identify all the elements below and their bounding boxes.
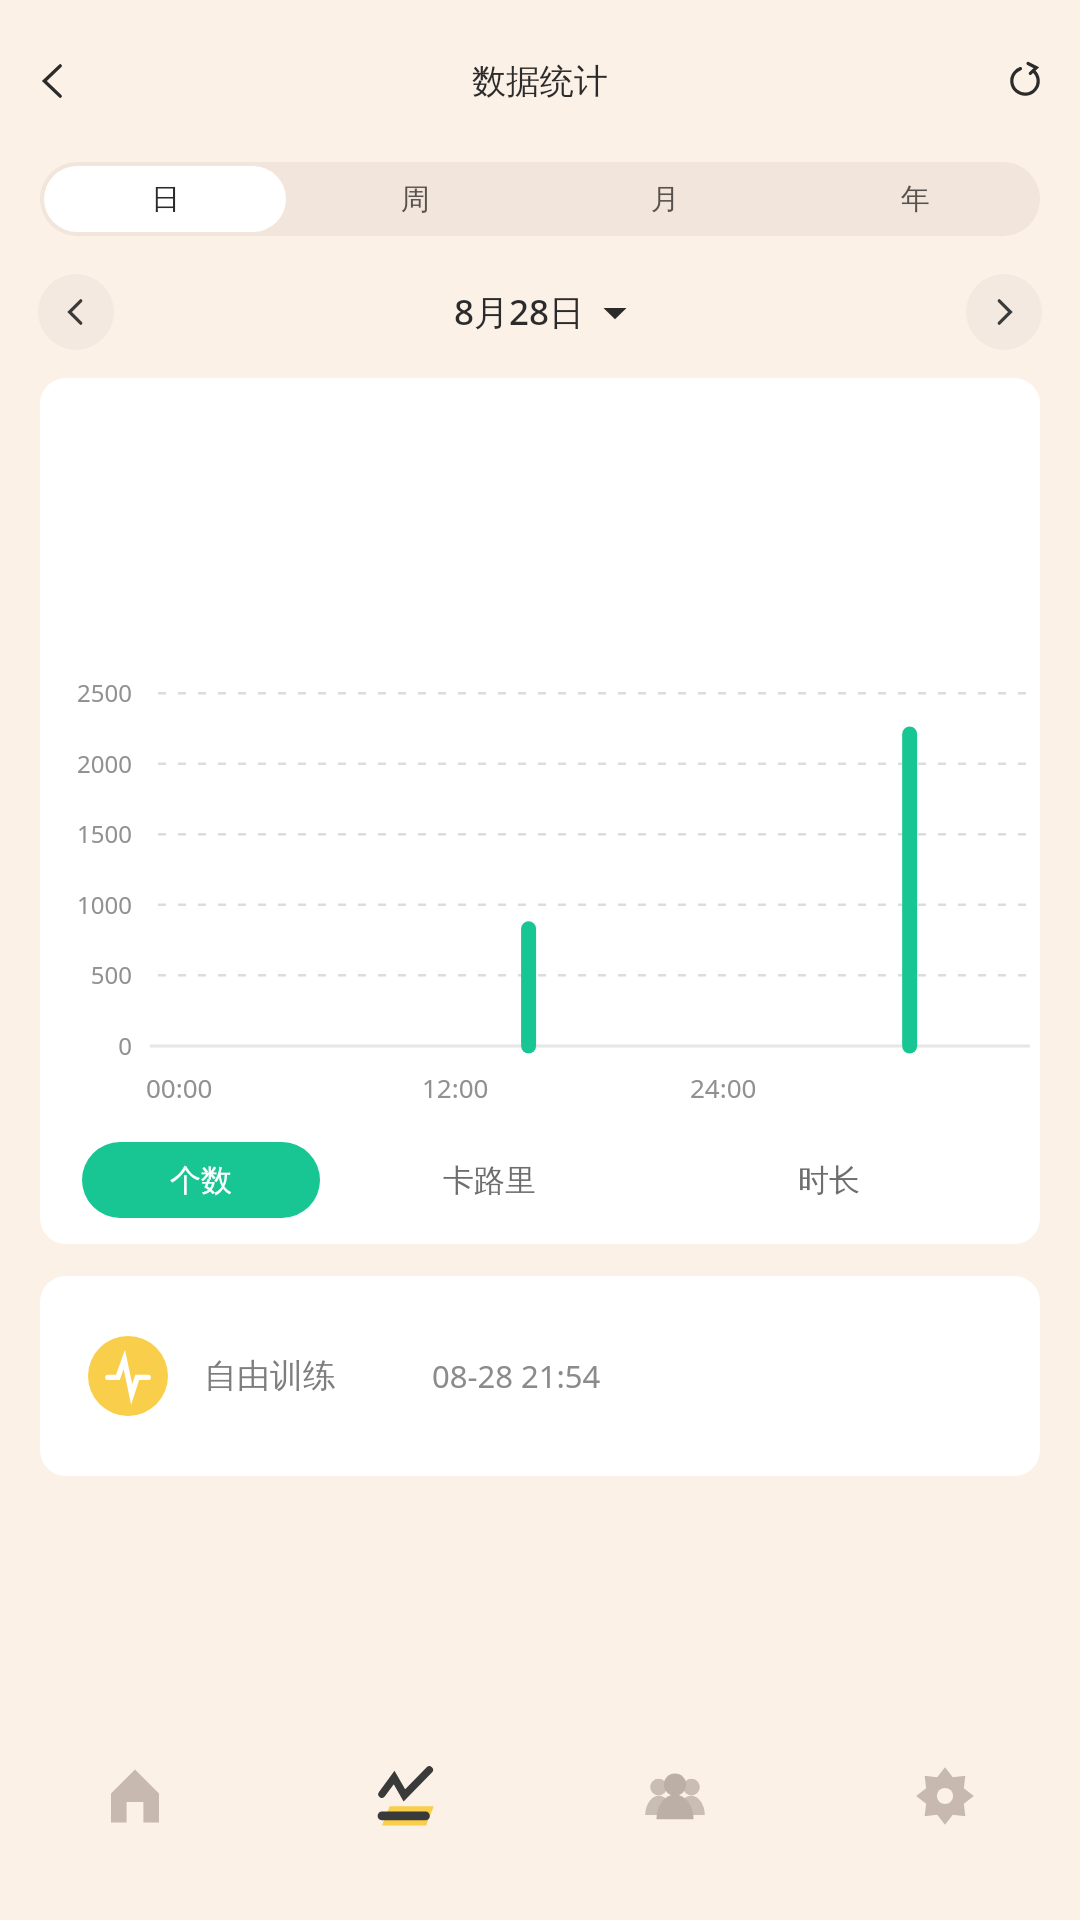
button[interactable]: Settings: [810, 1704, 1080, 1920]
staticText: 年: [901, 181, 930, 218]
staticText: 1000: [40, 888, 132, 921]
button[interactable]: Next: [966, 274, 1042, 350]
button[interactable]: 月: [544, 166, 786, 232]
staticText: 12:00: [422, 1070, 489, 1105]
staticText: 500: [40, 958, 132, 991]
staticText: 1500: [40, 817, 132, 850]
staticText: 卡路里: [443, 1161, 536, 1200]
button[interactable]: Friends: [540, 1704, 810, 1920]
button[interactable]: 个数: [82, 1142, 320, 1218]
staticText: 0: [40, 1029, 132, 1062]
button[interactable]: Home: [0, 1704, 270, 1920]
staticText: 个数: [170, 1161, 232, 1200]
button[interactable]: Refresh: [988, 44, 1062, 118]
button[interactable]: 时长: [659, 1142, 998, 1218]
staticText: 2000: [40, 747, 132, 780]
staticText: 月: [651, 181, 680, 218]
button[interactable]: 卡路里: [320, 1142, 659, 1218]
button[interactable]: Back: [16, 44, 90, 118]
staticText: 时长: [798, 1161, 860, 1200]
staticText: 数据统计: [472, 60, 608, 103]
staticText: 周: [401, 181, 430, 218]
button[interactable]: 自由训练: [40, 1276, 1040, 1476]
staticText: 00:00: [146, 1070, 213, 1105]
staticText: 8月28日: [454, 288, 585, 336]
button[interactable]: Statistics: [270, 1704, 540, 1920]
button[interactable]: 8月28日: [114, 272, 966, 352]
button[interactable]: 年: [794, 166, 1036, 232]
button[interactable]: 周: [294, 166, 536, 232]
staticText: 日: [151, 181, 180, 218]
button[interactable]: 日: [44, 166, 286, 232]
button[interactable]: Previous: [38, 274, 114, 350]
staticText: 2500: [40, 676, 132, 709]
staticText: 24:00: [690, 1070, 757, 1105]
staticText: 08-28 21:54: [432, 1355, 601, 1397]
staticText: 自由训练: [204, 1355, 336, 1397]
